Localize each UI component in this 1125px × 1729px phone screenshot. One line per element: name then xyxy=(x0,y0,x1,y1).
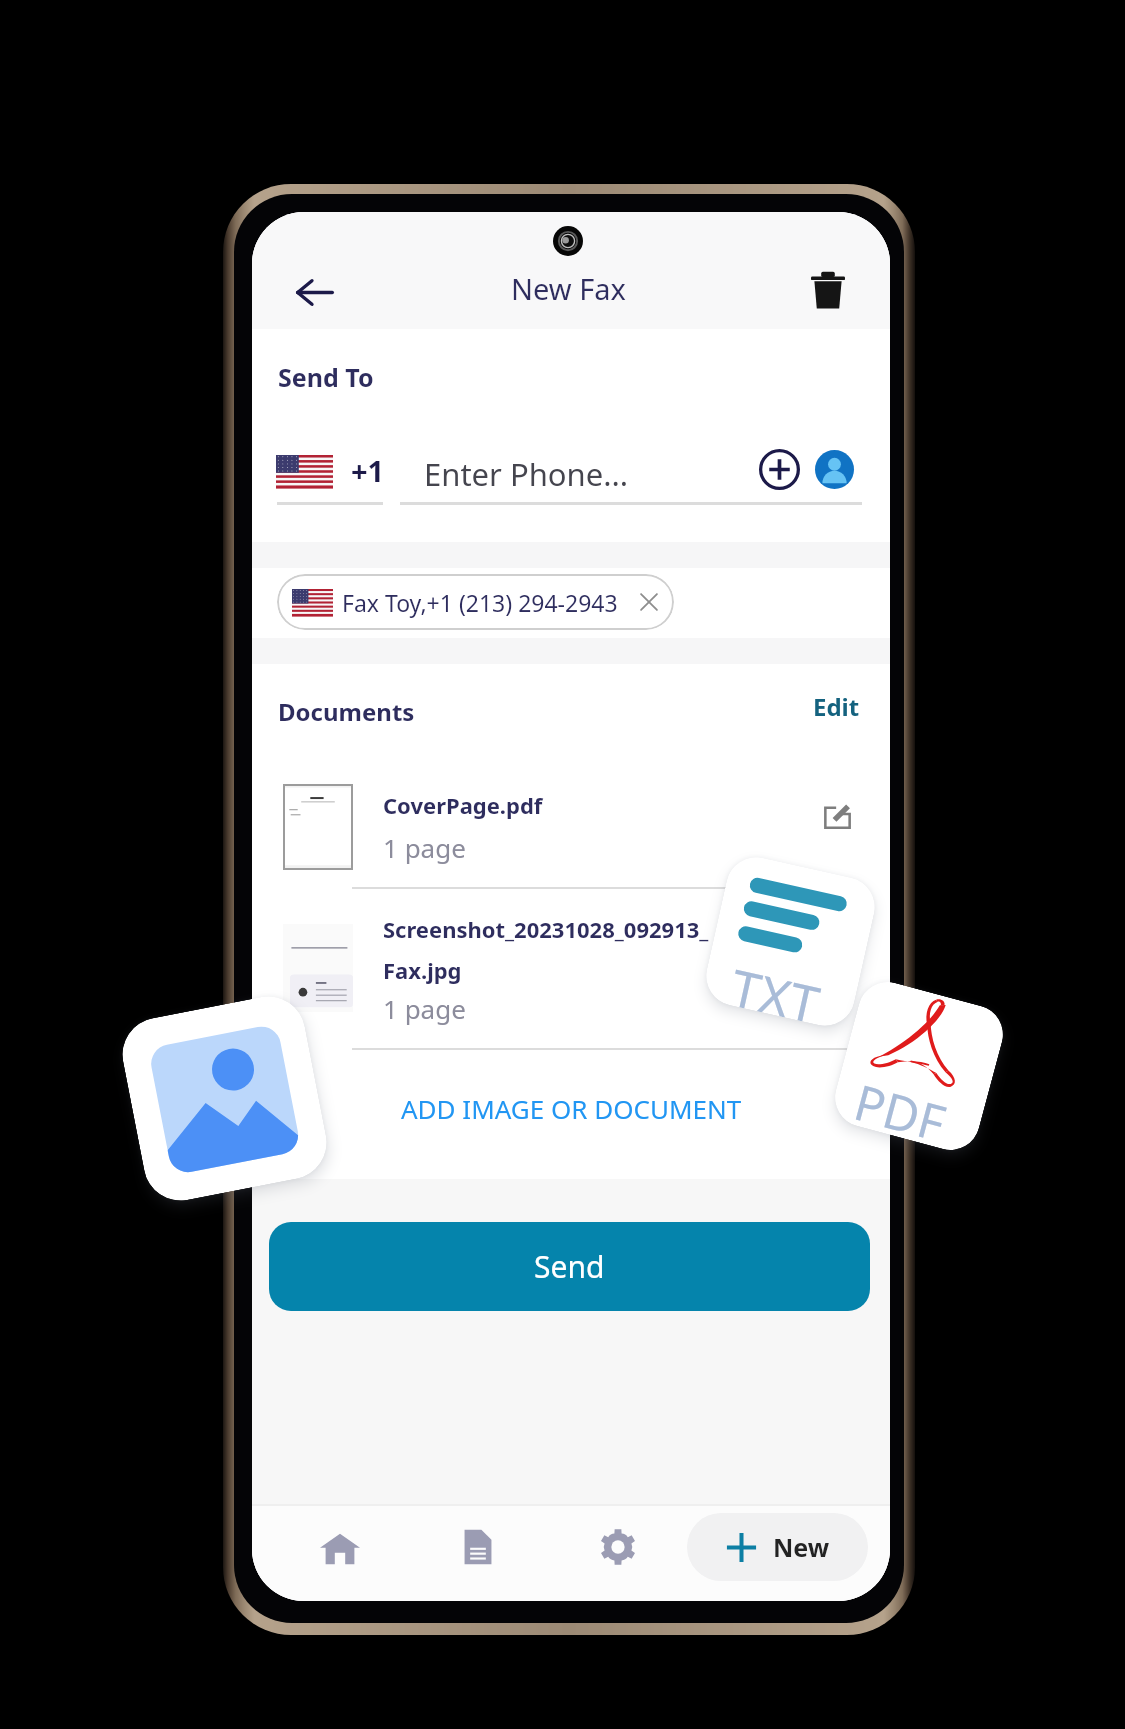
staticText: 1 page xyxy=(383,830,466,865)
staticText: +1 xyxy=(351,451,385,490)
staticText: CoverPage.pdf xyxy=(383,790,543,820)
button[interactable]: New xyxy=(687,1513,868,1581)
button[interactable]: Back xyxy=(286,263,344,321)
button[interactable]: Screenshot_20231028_092913_ xyxy=(252,889,890,1048)
button[interactable]: Edit document xyxy=(813,943,861,991)
staticText: Enter Phone... xyxy=(424,453,629,495)
staticText: ADD IMAGE OR DOCUMENT xyxy=(401,1091,742,1126)
button[interactable]: Home xyxy=(310,1519,370,1579)
button[interactable]: ADD IMAGE OR DOCUMENT xyxy=(252,1050,890,1179)
staticText: Send To xyxy=(278,360,374,394)
staticText: Screenshot_20231028_092913_ xyxy=(383,914,709,944)
button[interactable]: Send xyxy=(269,1222,870,1311)
button[interactable]: Add number xyxy=(755,445,803,493)
staticText: 1 page xyxy=(383,991,466,1026)
staticText: New Fax xyxy=(511,269,626,308)
button[interactable]: Edit document xyxy=(813,792,861,840)
button[interactable]: Documents xyxy=(448,1517,508,1577)
button[interactable]: CoverPage.pdf xyxy=(252,732,890,887)
staticText: Fax.jpg xyxy=(383,955,462,985)
button[interactable]: Contacts xyxy=(812,447,856,491)
staticText: New xyxy=(773,1530,830,1564)
staticText: Send xyxy=(534,1246,605,1287)
button[interactable]: Fax Toy,+1 (213) 294-2943 xyxy=(277,574,674,630)
staticText: Fax Toy,+1 (213) 294-2943 xyxy=(342,587,618,618)
button[interactable]: Delete xyxy=(800,262,856,318)
staticText: TXT xyxy=(728,951,827,1024)
staticText: Documents xyxy=(278,695,415,728)
button[interactable]: Edit xyxy=(807,684,865,728)
button[interactable]: Settings xyxy=(588,1517,648,1577)
staticText: PDF xyxy=(850,1068,952,1148)
staticText: Edit xyxy=(813,690,860,723)
